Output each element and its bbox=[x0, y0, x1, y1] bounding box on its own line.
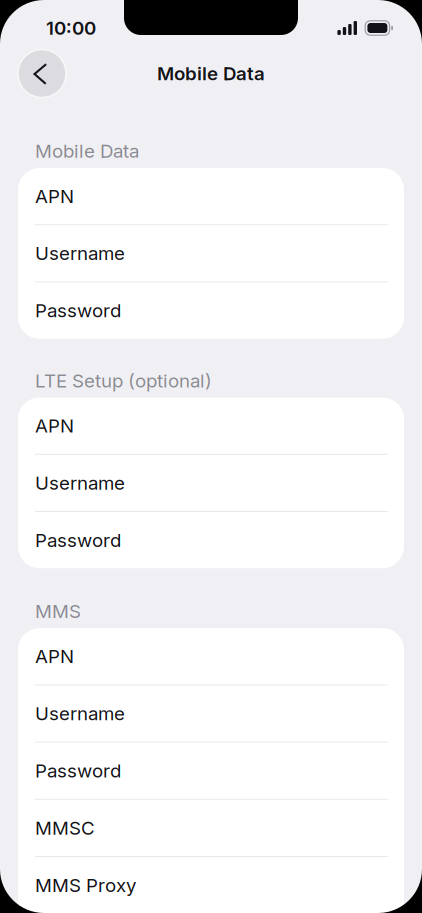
staticText: MMS Proxy bbox=[35, 874, 136, 896]
button[interactable]: Back bbox=[18, 49, 66, 97]
staticText: Username bbox=[35, 702, 125, 725]
button[interactable]: Username bbox=[18, 225, 404, 281]
staticText: Username bbox=[35, 242, 125, 265]
staticText: APN bbox=[35, 645, 74, 668]
staticText: APN bbox=[35, 414, 74, 437]
staticText: Password bbox=[35, 299, 121, 322]
button[interactable]: Username bbox=[18, 455, 404, 511]
button[interactable]: APN bbox=[18, 628, 404, 684]
staticText: Username bbox=[35, 472, 125, 494]
staticText: 10:00 bbox=[46, 17, 96, 39]
button[interactable]: Password bbox=[18, 743, 404, 799]
button[interactable]: Password bbox=[18, 512, 404, 568]
button[interactable]: MMSC bbox=[18, 800, 404, 856]
button[interactable]: APN bbox=[18, 168, 404, 224]
button[interactable]: MMS Proxy bbox=[18, 857, 404, 913]
staticText: LTE Setup (optional) bbox=[35, 369, 212, 392]
staticText: Password bbox=[35, 759, 121, 782]
staticText: MMS bbox=[35, 600, 81, 622]
button[interactable]: APN bbox=[18, 398, 404, 454]
button[interactable]: Username bbox=[18, 685, 404, 742]
staticText: MMSC bbox=[35, 817, 95, 839]
button[interactable]: Password bbox=[18, 282, 404, 339]
staticText: Mobile Data bbox=[157, 62, 265, 85]
staticText: Mobile Data bbox=[35, 140, 139, 162]
staticText: Password bbox=[35, 529, 121, 551]
staticText: APN bbox=[35, 185, 74, 207]
